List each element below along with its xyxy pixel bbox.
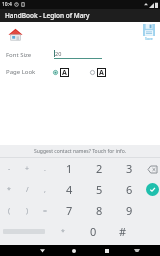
button[interactable]: 6: [114, 179, 144, 200]
button[interactable]: 8: [84, 200, 114, 221]
button[interactable]: Enter: [146, 183, 159, 196]
staticText: Font Size: [6, 51, 32, 59]
staticText: 4: [66, 182, 73, 197]
staticText: /: [26, 185, 29, 195]
button[interactable]: Save: [143, 24, 155, 41]
button[interactable]: Keyboard: [131, 245, 143, 256]
button[interactable]: 1: [54, 158, 84, 179]
staticText: 5: [96, 182, 103, 197]
staticText: 3: [126, 161, 133, 176]
staticText: Page Look: [6, 68, 36, 76]
staticText: Suggest contact names? Touch for info.: [34, 148, 127, 155]
staticText: 20: [55, 50, 62, 57]
staticText: 2: [96, 161, 103, 176]
staticText: .: [44, 164, 46, 174]
staticText: #: [119, 224, 127, 239]
button[interactable]: 20: [54, 50, 102, 59]
staticText: 10:4: [2, 1, 12, 8]
button[interactable]: 2: [84, 158, 114, 179]
staticText: Save: [145, 36, 153, 41]
button[interactable]: Page look option: [90, 68, 106, 77]
staticText: 8: [96, 203, 103, 218]
staticText: ): [26, 206, 29, 216]
button[interactable]: Back: [36, 245, 48, 256]
staticText: 9: [126, 203, 133, 218]
staticText: HandBook - Legion of Mary: [5, 11, 90, 20]
button[interactable]: *: [48, 221, 78, 242]
button[interactable]: Backspace: [145, 162, 159, 176]
button[interactable]: Recent apps: [101, 245, 113, 256]
button[interactable]: ): [18, 200, 36, 221]
staticText: 7: [66, 203, 73, 218]
button[interactable]: (: [0, 200, 18, 221]
button[interactable]: -: [0, 158, 18, 179]
button[interactable]: =: [36, 200, 54, 221]
staticText: -: [8, 164, 11, 174]
staticText: =: [43, 206, 48, 216]
button[interactable]: 9: [114, 200, 144, 221]
staticText: *: [61, 227, 65, 237]
button[interactable]: 0: [78, 221, 108, 242]
staticText: ,: [44, 185, 46, 195]
staticText: A: [62, 68, 67, 77]
button[interactable]: Page look option selected: [53, 68, 69, 77]
staticText: (: [8, 206, 11, 216]
staticText: 0: [90, 224, 97, 239]
button[interactable]: +: [18, 158, 36, 179]
button[interactable]: Suggest contact names? Touch for info.: [0, 145, 160, 157]
staticText: A: [99, 68, 104, 77]
staticText: *: [7, 185, 11, 195]
button[interactable]: 4: [54, 179, 84, 200]
button[interactable]: 7: [54, 200, 84, 221]
button[interactable]: 5: [84, 179, 114, 200]
button[interactable]: ,: [36, 179, 54, 200]
button[interactable]: *: [0, 179, 18, 200]
button[interactable]: 3: [114, 158, 144, 179]
button[interactable]: Home: [6, 25, 24, 43]
staticText: 6: [126, 182, 133, 197]
staticText: 1: [66, 161, 73, 176]
staticText: +: [25, 164, 30, 174]
button[interactable]: /: [18, 179, 36, 200]
button[interactable]: #: [108, 221, 138, 242]
button[interactable]: Home: [68, 245, 80, 256]
